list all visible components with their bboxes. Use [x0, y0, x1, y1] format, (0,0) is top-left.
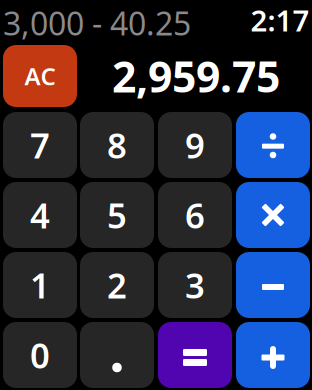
staticText: 2:17 — [250, 0, 309, 39]
staticText: 3,000 - 40.25 — [3, 2, 191, 44]
button[interactable]: Multiply — [236, 182, 310, 248]
staticText: 6 — [185, 192, 205, 238]
button[interactable]: 5 — [80, 182, 154, 248]
button[interactable]: 6 — [158, 182, 232, 248]
button[interactable]: 0 — [3, 322, 77, 388]
button[interactable]: Minus — [236, 252, 310, 318]
staticText: 4 — [30, 192, 50, 238]
button[interactable]: AC — [3, 45, 77, 107]
button[interactable]: Plus — [236, 322, 310, 388]
staticText: 7 — [30, 122, 50, 168]
button[interactable]: 3 — [158, 252, 232, 318]
staticText: 1 — [30, 262, 50, 308]
staticText: 3 — [185, 262, 205, 308]
button[interactable]: 8 — [80, 112, 154, 178]
staticText: 2 — [107, 262, 127, 308]
staticText: 0 — [30, 332, 50, 378]
staticText: AC — [24, 60, 55, 92]
button[interactable]: 9 — [158, 112, 232, 178]
staticText: 5 — [107, 192, 127, 238]
button[interactable]: 7 — [3, 112, 77, 178]
button[interactable]: 2 — [80, 252, 154, 318]
button[interactable]: 4 — [3, 182, 77, 248]
button[interactable]: Divide — [236, 112, 310, 178]
button[interactable]: 1 — [3, 252, 77, 318]
button[interactable]: Decimal point — [80, 322, 154, 388]
button[interactable]: Equals — [158, 322, 232, 388]
staticText: 2,959.75 — [112, 48, 280, 104]
staticText: 9 — [185, 122, 205, 168]
staticText: 8 — [107, 122, 127, 168]
